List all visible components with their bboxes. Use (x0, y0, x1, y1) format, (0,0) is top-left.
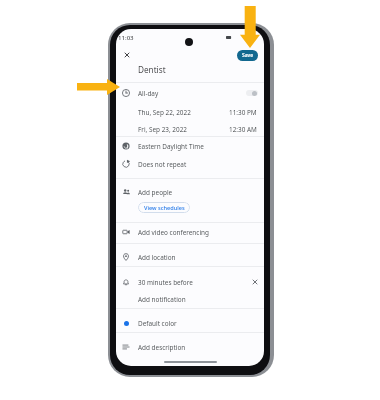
button[interactable]: Does not repeat (116, 155, 264, 173)
button[interactable]: Save (237, 50, 258, 61)
button[interactable]: Add people (116, 183, 264, 201)
staticText: 30 minutes before (138, 278, 250, 287)
button[interactable]: All-day (116, 84, 264, 102)
staticText: Add notification (138, 295, 264, 304)
staticText: Dentist (138, 64, 166, 75)
staticText: 11:03 (118, 33, 134, 41)
staticText: Save (242, 52, 254, 59)
button[interactable]: Default color (116, 314, 264, 332)
button[interactable]: Add location (116, 248, 264, 266)
staticText: Eastern Daylight Time (138, 142, 264, 151)
button[interactable]: All-day toggle (246, 90, 258, 96)
button[interactable]: Eastern Daylight Time (116, 137, 264, 155)
button[interactable]: Add notification (116, 290, 264, 308)
staticText: Add video conferencing (138, 228, 264, 237)
staticText: View schedules (144, 204, 185, 212)
button[interactable]: Remove notification (250, 277, 260, 287)
button[interactable]: View schedules (138, 202, 190, 213)
button[interactable]: Fri, Sep 23, 2022 (116, 120, 264, 138)
staticText: 11:30 PM (229, 108, 257, 117)
staticText: Default color (138, 319, 264, 328)
staticText: 12:30 AM (229, 125, 257, 134)
button[interactable]: Add description (116, 338, 264, 356)
staticText: Add description (138, 343, 264, 352)
staticText: Add location (138, 253, 264, 262)
button[interactable]: Thu, Sep 22, 2022 (116, 103, 264, 121)
button[interactable]: 30 minutes before (116, 273, 264, 291)
button[interactable]: Add video conferencing (116, 223, 264, 241)
staticText: All-day (138, 89, 246, 98)
staticText: Thu, Sep 22, 2022 (138, 108, 229, 117)
staticText: Does not repeat (138, 160, 264, 169)
staticText: Add people (138, 188, 264, 197)
button[interactable]: Close (119, 47, 135, 63)
staticText: Fri, Sep 23, 2022 (138, 125, 229, 134)
